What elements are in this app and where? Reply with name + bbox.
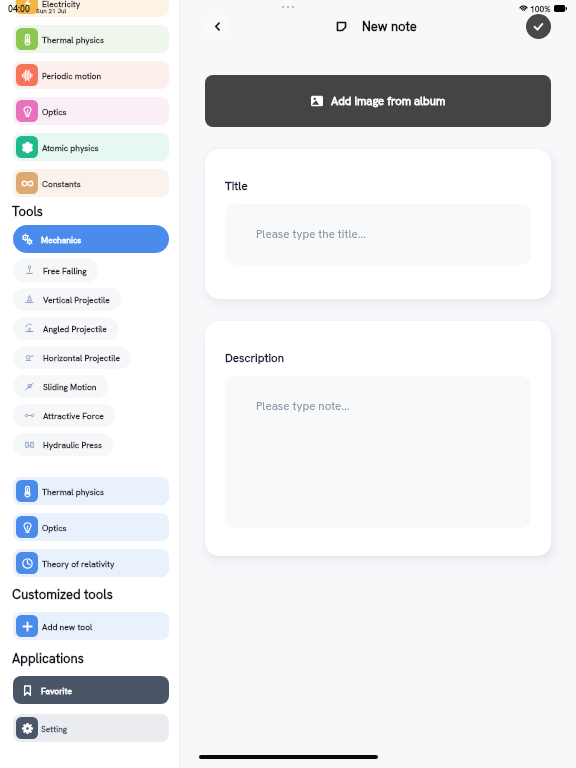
staticText: Tools: [12, 203, 43, 220]
button[interactable]: Sliding Motion: [13, 375, 108, 398]
button[interactable]: Optics: [13, 97, 169, 125]
staticText: Title: [225, 178, 248, 193]
staticText: Constants: [42, 178, 81, 189]
staticText: Periodic motion: [42, 70, 102, 81]
button[interactable]: Back: [205, 14, 230, 39]
button[interactable]: Optics: [13, 513, 169, 541]
button[interactable]: Thermal physics: [13, 25, 169, 53]
button[interactable]: Theory of relativity: [13, 549, 169, 577]
button[interactable]: Angled Projectile: [13, 317, 118, 340]
button[interactable]: Favorite: [13, 676, 169, 704]
button[interactable]: Constants: [13, 169, 169, 197]
button[interactable]: Please type note...: [225, 376, 531, 528]
staticText: Vertical Projectile: [43, 294, 110, 305]
staticText: Sun 21 Jul: [36, 6, 67, 14]
staticText: Please type note...: [256, 398, 350, 413]
staticText: Description: [225, 350, 284, 365]
staticText: Optics: [42, 106, 67, 117]
button[interactable]: Save note: [526, 14, 551, 39]
staticText: Thermal physics: [42, 486, 104, 497]
button[interactable]: Free Falling: [13, 259, 98, 282]
staticText: Mechanics: [41, 234, 82, 245]
staticText: Thermal physics: [42, 34, 104, 45]
staticText: Add new tool: [42, 621, 93, 632]
staticText: Favorite: [41, 685, 72, 696]
button[interactable]: Horizontal Projectile: [13, 346, 131, 369]
button[interactable]: Add image from album: [205, 75, 551, 127]
button[interactable]: Please type the title...: [225, 204, 531, 265]
staticText: Horizontal Projectile: [43, 352, 120, 363]
button[interactable]: Vertical Projectile: [13, 288, 121, 311]
staticText: Atomic physics: [42, 142, 99, 153]
staticText: Please type the title...: [256, 226, 366, 241]
button[interactable]: Hydraulic Press: [13, 433, 113, 456]
staticText: Add image from album: [331, 94, 446, 109]
button[interactable]: Add new tool: [13, 612, 169, 640]
button[interactable]: Attractive Force: [13, 404, 115, 427]
staticText: Hydraulic Press: [43, 439, 102, 450]
staticText: Attractive Force: [43, 410, 104, 421]
button[interactable]: Thermal physics: [13, 477, 169, 505]
staticText: Theory of relativity: [42, 558, 115, 569]
button[interactable]: Atomic physics: [13, 133, 169, 161]
button[interactable]: Periodic motion: [13, 61, 169, 89]
staticText: Setting: [41, 723, 68, 734]
button[interactable]: Mechanics: [13, 225, 169, 253]
staticText: Angled Projectile: [43, 323, 107, 334]
staticText: Free Falling: [43, 265, 87, 276]
staticText: Electricity: [42, 0, 81, 9]
staticText: 100%: [530, 3, 551, 14]
staticText: Optics: [42, 522, 67, 533]
staticText: Applications: [12, 650, 84, 667]
staticText: Sliding Motion: [43, 381, 97, 392]
button[interactable]: Setting: [13, 714, 169, 742]
staticText: Customized tools: [12, 586, 113, 603]
button[interactable]: Electricity: [13, 0, 169, 17]
staticText: New note: [362, 18, 417, 35]
staticText: 04:00: [8, 3, 30, 14]
